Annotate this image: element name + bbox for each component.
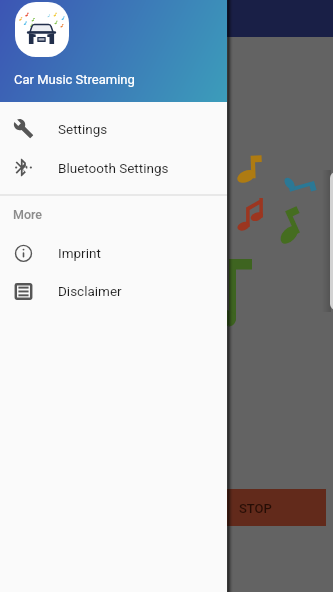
staticText: Car Music Streaming — [14, 72, 135, 87]
button[interactable]: Disclaimer — [0, 271, 227, 310]
staticText: More — [13, 207, 43, 222]
button[interactable]: Imprint — [0, 233, 227, 272]
staticText: Settings — [58, 121, 108, 137]
staticText: Imprint — [58, 245, 101, 261]
button[interactable]: Settings — [0, 109, 227, 148]
staticText: Bluetooth Settings — [58, 160, 169, 176]
button[interactable]: STOP — [205, 490, 333, 526]
staticText: Disclaimer — [58, 283, 122, 299]
staticText: STOP — [239, 501, 272, 516]
button[interactable]: Bluetooth Settings — [0, 148, 227, 187]
